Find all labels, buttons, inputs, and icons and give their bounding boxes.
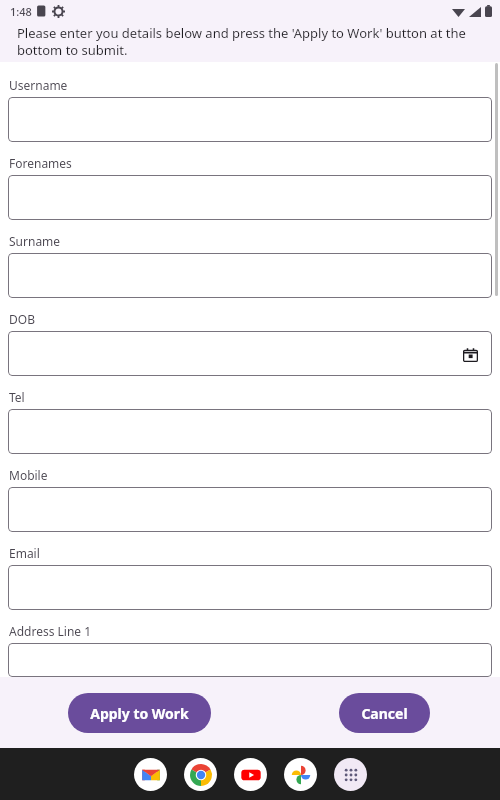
staticText: 1:48: [10, 4, 32, 19]
staticText: Surname: [9, 233, 61, 249]
button[interactable]: Chrome: [184, 758, 217, 791]
button[interactable]: Select date: [8, 331, 492, 376]
button[interactable]: Apply to Work: [68, 693, 211, 733]
button[interactable]: [8, 409, 492, 454]
button[interactable]: [8, 253, 492, 298]
button[interactable]: Cancel: [339, 693, 430, 733]
staticText: Mobile: [9, 467, 48, 483]
staticText: Cancel: [361, 704, 408, 723]
staticText: Email: [9, 545, 40, 561]
staticText: Apply to Work: [90, 704, 189, 723]
button[interactable]: All apps: [334, 758, 367, 791]
button[interactable]: Select date: [458, 342, 482, 366]
button[interactable]: [8, 175, 492, 220]
button[interactable]: [8, 97, 492, 142]
staticText: Address Line 1: [9, 623, 92, 639]
button[interactable]: [8, 487, 492, 532]
staticText: Tel: [9, 389, 25, 405]
staticText: Forenames: [9, 155, 72, 171]
button[interactable]: Gmail: [134, 758, 167, 791]
button[interactable]: Photos: [284, 758, 317, 791]
staticText: DOB: [9, 311, 35, 327]
staticText: Username: [9, 77, 68, 93]
staticText: Please enter you details below and press…: [17, 24, 488, 59]
button[interactable]: [8, 565, 492, 610]
button[interactable]: [8, 643, 492, 677]
button[interactable]: YouTube: [234, 758, 267, 791]
